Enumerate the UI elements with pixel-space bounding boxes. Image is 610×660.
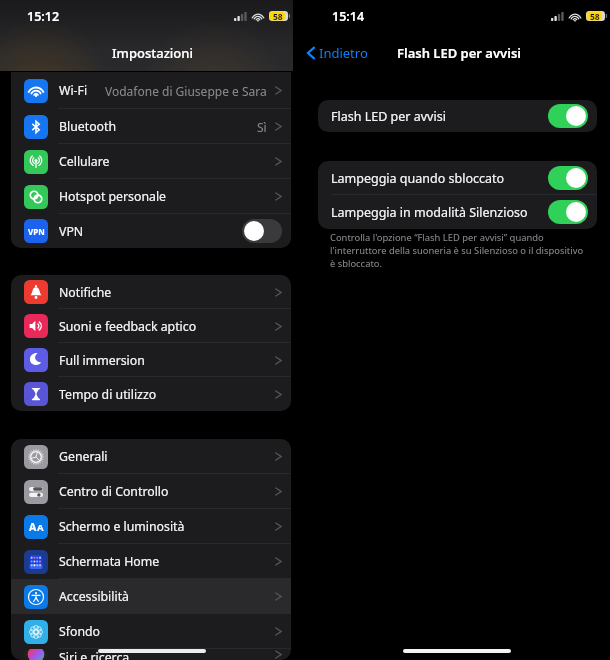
- staticText: Tempo di utilizzo: [59, 386, 157, 403]
- staticText: Flash LED per avvisi: [331, 108, 446, 125]
- staticText: Schermata Home: [59, 553, 160, 570]
- staticText: Notifiche: [59, 284, 112, 301]
- staticText: A: [37, 521, 44, 534]
- staticText: 58: [273, 11, 283, 21]
- button[interactable]: On: [548, 104, 588, 128]
- staticText: Full immersion: [59, 352, 145, 369]
- staticText: Accessibilità: [59, 588, 129, 605]
- button[interactable]: On: [548, 166, 588, 190]
- button[interactable]: Sfondo: [11, 614, 291, 649]
- staticText: Cellulare: [59, 153, 110, 170]
- staticText: Siri e ricerca: [59, 649, 130, 660]
- button[interactable]: Siri e ricerca: [11, 649, 291, 660]
- staticText: Lampeggia quando sbloccato: [331, 170, 505, 187]
- button[interactable]: Lampeggia in modalità Silenzioso: [318, 195, 597, 229]
- button[interactable]: On: [548, 200, 588, 224]
- staticText: Bluetooth: [59, 118, 117, 135]
- button[interactable]: Flash LED per avvisi: [318, 100, 597, 132]
- staticText: Hotspot personale: [59, 188, 167, 205]
- button[interactable]: Generali: [11, 439, 291, 474]
- staticText: A: [29, 520, 37, 534]
- staticText: Sfondo: [59, 623, 101, 640]
- staticText: 15:14: [332, 8, 365, 25]
- staticText: Controlla l'opzione “Flash LED per avvis…: [330, 231, 584, 270]
- staticText: VPN: [59, 223, 84, 240]
- button[interactable]: Lampeggia quando sbloccato: [318, 161, 597, 195]
- button[interactable]: Schermata Home: [11, 544, 291, 579]
- button[interactable]: Full immersion: [11, 343, 291, 377]
- staticText: Vodafone di Giuseppe e Sara: [105, 83, 267, 99]
- button[interactable]: A: [11, 509, 291, 544]
- staticText: Indietro: [319, 44, 368, 62]
- staticText: 58: [590, 11, 600, 21]
- button[interactable]: Centro di Controllo: [11, 474, 291, 509]
- button[interactable]: Wi-Fi: [11, 72, 291, 109]
- staticText: Schermo e luminosità: [59, 518, 185, 535]
- button[interactable]: VPN: [11, 214, 291, 248]
- button[interactable]: Hotspot personale: [11, 179, 291, 214]
- staticText: 15:12: [27, 8, 60, 25]
- staticText: Impostazioni: [112, 44, 193, 62]
- staticText: Suoni e feedback aptico: [59, 318, 197, 335]
- button[interactable]: Off: [242, 219, 282, 243]
- staticText: Flash LED per avvisi: [397, 44, 521, 62]
- button[interactable]: Indietro: [307, 44, 368, 62]
- button[interactable]: Accessibilità: [11, 579, 291, 614]
- staticText: Generali: [59, 448, 108, 465]
- button[interactable]: Cellulare: [11, 144, 291, 179]
- staticText: Sì: [257, 119, 267, 135]
- staticText: Wi-Fi: [59, 82, 88, 99]
- staticText: Centro di Controllo: [59, 483, 169, 500]
- button[interactable]: Notifiche: [11, 275, 291, 309]
- staticText: VPN: [28, 226, 45, 237]
- button[interactable]: Tempo di utilizzo: [11, 377, 291, 411]
- button[interactable]: Suoni e feedback aptico: [11, 309, 291, 343]
- button[interactable]: Bluetooth: [11, 109, 291, 144]
- staticText: Lampeggia in modalità Silenzioso: [331, 204, 528, 221]
